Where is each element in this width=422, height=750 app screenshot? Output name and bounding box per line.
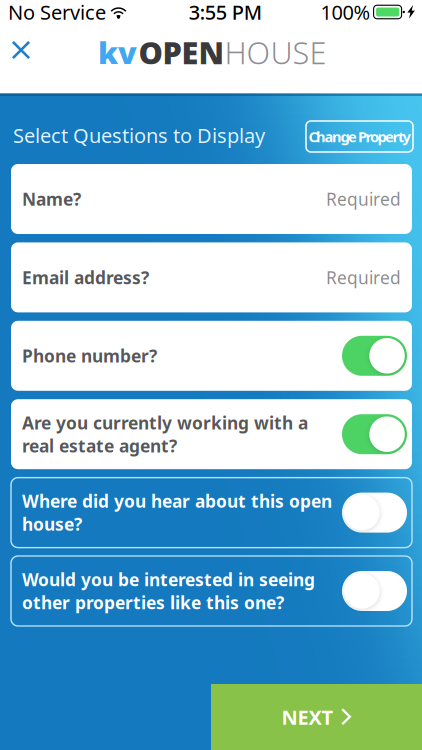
staticText: 3:55 PM [189, 0, 262, 25]
button[interactable]: Name? [11, 164, 412, 234]
staticText: No Service [8, 0, 106, 25]
button[interactable]: Close [1, 28, 41, 72]
button[interactable]: Email address? [11, 242, 412, 312]
staticText: Would you be interested in seeing other … [22, 568, 315, 614]
staticText: Select Questions to Display [13, 122, 265, 149]
staticText: NEXT [281, 704, 333, 730]
staticText: kv [98, 32, 137, 73]
staticText: Are you currently working with a real es… [22, 411, 308, 457]
staticText: 100% [321, 0, 371, 25]
staticText: Where did you hear about this open house… [22, 490, 332, 536]
staticText: Name? [22, 187, 81, 210]
staticText: HOUSE [224, 32, 326, 73]
button[interactable]: NEXT [211, 684, 422, 750]
button[interactable]: Change Property [306, 121, 413, 152]
staticText: Change Property [308, 127, 410, 146]
staticText: Required [326, 187, 401, 210]
button[interactable]: Phone number? [11, 321, 412, 391]
button[interactable]: Where did you hear about this open house… [11, 478, 412, 548]
staticText: OPEN [138, 32, 224, 73]
staticText: Email address? [22, 266, 149, 289]
button[interactable]: Are you currently working with a real es… [11, 399, 412, 469]
staticText: Phone number? [22, 344, 157, 367]
button[interactable]: Would you be interested in seeing other … [11, 556, 412, 626]
staticText: Required [326, 266, 401, 289]
